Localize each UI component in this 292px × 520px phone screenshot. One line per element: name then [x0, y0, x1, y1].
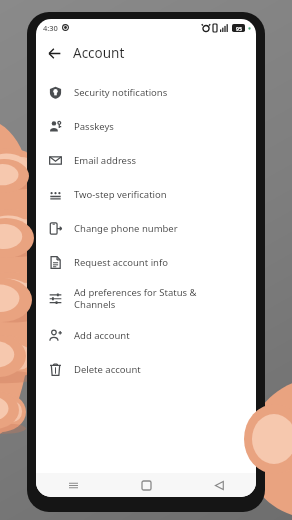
button[interactable]: Back — [183, 473, 256, 497]
staticText: Passkeys — [74, 120, 114, 133]
button[interactable]: Passkeys — [36, 109, 256, 143]
button[interactable]: Delete account — [36, 352, 256, 386]
staticText: Two-step verification — [74, 188, 167, 201]
staticText: Security notifications — [74, 86, 168, 99]
button[interactable]: Home — [110, 473, 183, 497]
button[interactable]: Recents — [36, 473, 110, 497]
button[interactable]: Change phone number — [36, 211, 256, 245]
staticText: Account — [73, 44, 125, 62]
button[interactable]: Back — [42, 41, 66, 65]
staticText: Request account info — [74, 256, 168, 269]
button[interactable]: Ad preferences for Status & Channels — [36, 279, 256, 318]
staticText: Change phone number — [74, 222, 178, 235]
staticText: Add account — [74, 329, 130, 342]
button[interactable]: Two-step verification — [36, 177, 256, 211]
staticText: Email address — [74, 154, 137, 167]
staticText: Ad preferences for Status & Channels — [74, 286, 197, 311]
staticText: 95 — [236, 25, 242, 32]
button[interactable]: Security notifications — [36, 75, 256, 109]
button[interactable]: Add account — [36, 318, 256, 352]
button[interactable]: Email address — [36, 143, 256, 177]
staticText: 4:30 — [43, 23, 58, 33]
button[interactable]: Request account info — [36, 245, 256, 279]
staticText: Delete account — [74, 363, 141, 376]
